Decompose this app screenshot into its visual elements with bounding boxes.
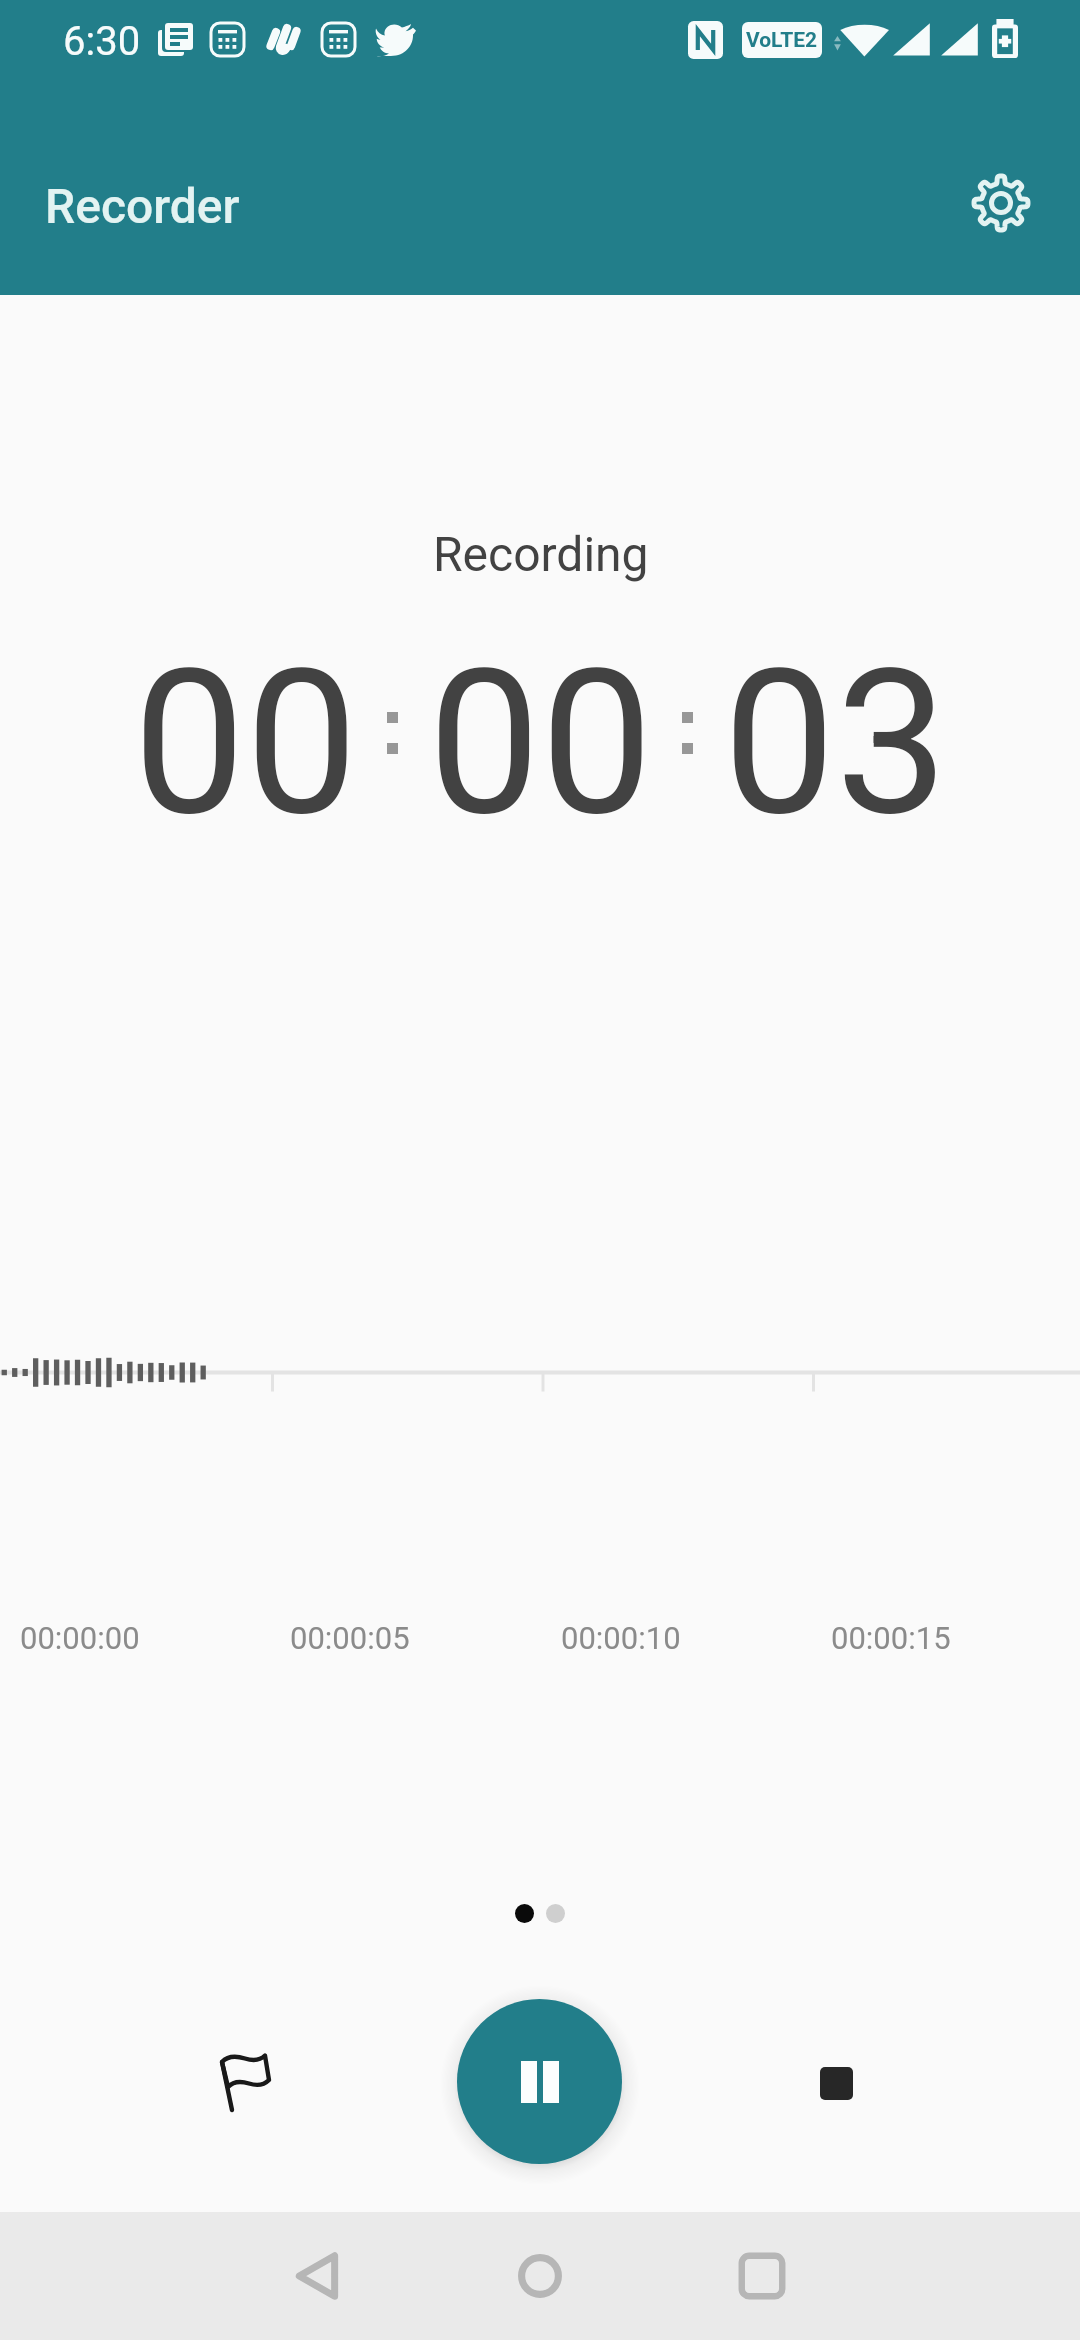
- staticText: 00: [133, 626, 358, 860]
- button[interactable]: Home: [480, 2212, 600, 2340]
- staticText: 6:30: [63, 18, 141, 65]
- staticText: Recorder: [45, 178, 240, 234]
- staticText: Recording: [433, 526, 649, 582]
- staticText: 00:00:10: [561, 1620, 681, 1656]
- button[interactable]: Add marker: [189, 2028, 299, 2138]
- staticText: 00: [428, 626, 653, 860]
- staticText: VoLTE2: [746, 28, 818, 53]
- staticText: 00:00:00: [20, 1620, 140, 1656]
- button[interactable]: Back: [258, 2212, 378, 2340]
- staticText: 00:00:15: [831, 1620, 951, 1656]
- button[interactable]: Recent apps: [702, 2212, 822, 2340]
- button[interactable]: Stop recording: [781, 2028, 891, 2138]
- staticText: 03: [723, 626, 948, 860]
- button[interactable]: Pause recording: [457, 1999, 622, 2164]
- button[interactable]: Settings: [945, 147, 1057, 259]
- staticText: 00:00:05: [290, 1620, 410, 1656]
